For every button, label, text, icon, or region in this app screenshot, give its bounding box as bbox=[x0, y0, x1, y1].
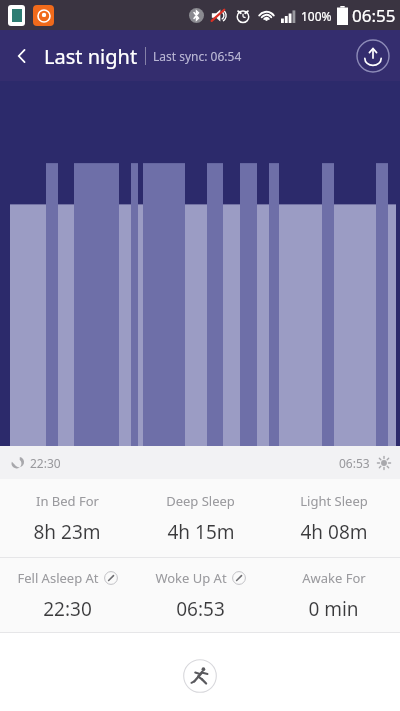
button[interactable]: Light Sleep bbox=[267, 479, 400, 557]
staticText: 06:55 bbox=[352, 4, 396, 27]
staticText: In Bed For bbox=[36, 492, 99, 510]
button[interactable]: Activity bbox=[183, 659, 217, 693]
staticText: 22:30 bbox=[30, 455, 61, 471]
button[interactable]: Back bbox=[0, 34, 44, 78]
staticText: 100% bbox=[301, 8, 332, 24]
staticText: Awake For bbox=[302, 569, 366, 587]
staticText: Last night bbox=[44, 43, 138, 70]
staticText: Woke Up At bbox=[155, 569, 227, 587]
staticText: 4h 15m bbox=[167, 519, 235, 545]
staticText: 06:53 bbox=[176, 596, 225, 622]
staticText: 0 min bbox=[308, 596, 359, 622]
button[interactable]: Deep Sleep bbox=[134, 479, 267, 557]
staticText: 06:53 bbox=[339, 455, 370, 471]
staticText: 8h 23m bbox=[33, 519, 101, 545]
button[interactable]: Fell Asleep At bbox=[0, 558, 134, 632]
button[interactable]: In Bed For bbox=[0, 479, 134, 557]
button[interactable]: Awake For bbox=[267, 558, 400, 632]
staticText: Light Sleep bbox=[300, 492, 368, 510]
staticText: 22:30 bbox=[43, 596, 92, 622]
staticText: Fell Asleep At bbox=[17, 569, 99, 587]
staticText: 4h 08m bbox=[300, 519, 368, 545]
staticText: Deep Sleep bbox=[166, 492, 235, 510]
button[interactable]: Woke Up At bbox=[134, 558, 267, 632]
staticText: Last sync: 06:54 bbox=[153, 48, 242, 64]
button[interactable]: Share bbox=[356, 39, 390, 73]
